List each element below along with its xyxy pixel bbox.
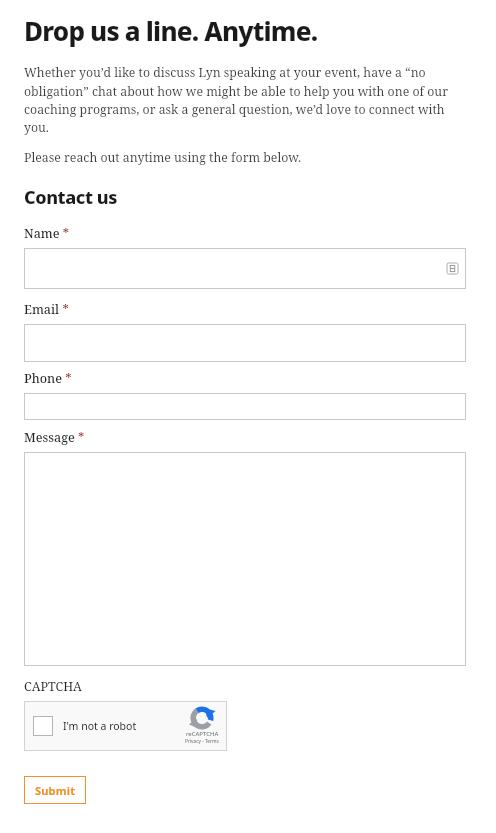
button[interactable]: Phone input field <box>24 393 466 420</box>
button[interactable]: Message input field <box>24 452 466 666</box>
staticText: Phone * <box>24 370 72 387</box>
staticText: Privacy - Terms <box>185 738 219 745</box>
staticText: CAPTCHA <box>24 678 82 695</box>
staticText: Email * <box>24 301 69 318</box>
staticText: Submit <box>35 783 76 798</box>
staticText: Name * <box>24 225 70 242</box>
staticText: Whether you’d like to discuss Lyn speaki… <box>24 64 466 135</box>
button[interactable]: Name input field <box>24 248 466 289</box>
staticText: Drop us a line. Anytime. <box>24 13 318 48</box>
button[interactable]: I'm not a robot reCAPTCHA verification <box>24 701 227 751</box>
button[interactable]: Submit <box>24 776 86 804</box>
button[interactable]: Email input field <box>24 324 466 362</box>
staticText: reCAPTCHA <box>186 730 219 738</box>
staticText: Please reach out anytime using the form … <box>24 149 302 166</box>
staticText: Message * <box>24 429 85 446</box>
staticText: Contact us <box>24 185 118 210</box>
staticText: I'm not a robot <box>63 719 137 733</box>
